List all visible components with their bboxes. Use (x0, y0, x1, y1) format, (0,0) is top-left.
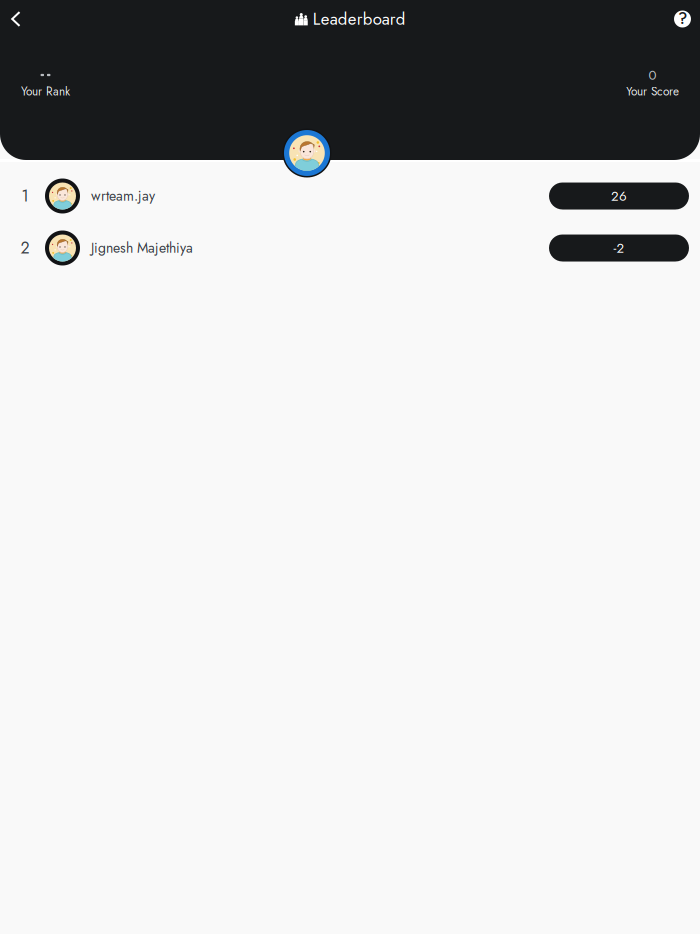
button[interactable]: Help (674, 0, 700, 38)
button[interactable]: 1 (0, 170, 700, 222)
staticText: Your Rank (21, 83, 70, 100)
staticText: 2 (20, 236, 29, 259)
staticText: -2 (613, 238, 624, 258)
staticText: ? (678, 7, 687, 30)
staticText: Your Score (626, 83, 679, 100)
staticText: Leaderboard (313, 7, 406, 31)
staticText: Jignesh Majethiya (91, 238, 193, 258)
staticText: 26 (611, 186, 627, 206)
button[interactable]: 2 (0, 222, 700, 274)
staticText: 0 (648, 65, 656, 85)
button[interactable]: Back (0, 0, 34, 38)
staticText: wrteam.jay (91, 186, 155, 206)
staticText: 1 (21, 184, 28, 207)
